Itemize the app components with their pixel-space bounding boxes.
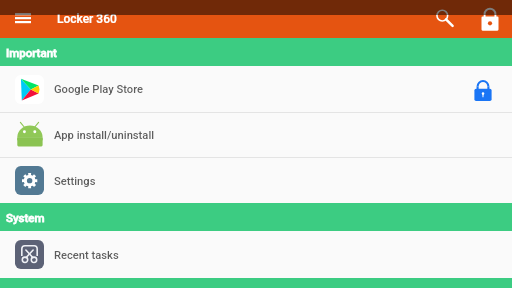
button[interactable]: Recent tasks <box>0 231 512 278</box>
button[interactable]: Search <box>430 3 462 35</box>
button[interactable]: Lock screen <box>473 2 507 36</box>
staticText: Locker 360 <box>57 12 117 26</box>
button[interactable]: App install/uninstall <box>0 113 512 157</box>
staticText: Recent tasks <box>54 249 119 262</box>
button[interactable]: Settings <box>0 158 512 203</box>
staticText: Important <box>6 46 57 59</box>
staticText: Google Play Store <box>54 83 144 96</box>
staticText: Settings <box>54 175 96 188</box>
button[interactable]: Google Play Store <box>0 66 512 112</box>
button[interactable]: Open navigation menu <box>7 4 38 35</box>
other: Locked <box>471 78 495 102</box>
staticText: System <box>6 211 45 224</box>
staticText: App install/uninstall <box>54 129 155 142</box>
